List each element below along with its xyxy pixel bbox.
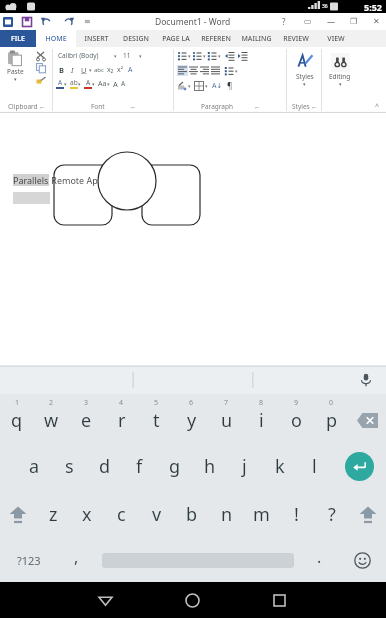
button[interactable]: Align xyxy=(177,65,188,76)
button[interactable]: c xyxy=(104,490,139,538)
button[interactable]: Emoji xyxy=(338,538,386,582)
button[interactable]: List xyxy=(207,51,217,61)
button[interactable]: I xyxy=(67,64,78,75)
button[interactable]: Paste xyxy=(0,47,52,113)
staticText: ⌐ xyxy=(312,104,317,110)
button[interactable]: REVIEW xyxy=(276,30,316,47)
button[interactable]: k xyxy=(262,442,297,490)
button[interactable]: Editing xyxy=(322,47,358,113)
button[interactable]: s xyxy=(52,442,87,490)
button[interactable]: Color xyxy=(56,78,64,89)
button[interactable]: 9 xyxy=(279,394,314,442)
button[interactable]: 3 xyxy=(69,394,104,442)
button[interactable]: ! xyxy=(279,490,314,538)
button[interactable]: ▭ xyxy=(302,16,313,27)
button[interactable]: z xyxy=(36,490,70,538)
button[interactable]: m xyxy=(244,490,279,538)
staticText: f xyxy=(136,454,143,479)
button[interactable]: U xyxy=(78,64,89,75)
staticText: ▾ xyxy=(89,67,92,73)
other: Cut xyxy=(36,51,46,61)
button[interactable]: PAGE LA xyxy=(156,30,196,47)
button[interactable]: Back xyxy=(77,582,134,618)
button[interactable]: 1 xyxy=(0,394,34,442)
button[interactable]: FILE xyxy=(0,30,36,47)
button[interactable]: Backspace xyxy=(349,394,386,442)
staticText: 6 xyxy=(189,398,194,408)
button[interactable]: Align xyxy=(210,65,221,76)
button[interactable]: List xyxy=(174,47,286,113)
staticText: 9 xyxy=(294,398,299,408)
button[interactable]: VIEW xyxy=(316,30,356,47)
button[interactable]: Voice input xyxy=(356,370,376,390)
staticText: ▾ xyxy=(303,81,306,87)
staticText: z xyxy=(49,502,58,527)
button[interactable]: , xyxy=(58,538,95,582)
button[interactable]: REFEREN xyxy=(196,30,236,47)
button[interactable]: 8 xyxy=(244,394,279,442)
button[interactable]: 6 xyxy=(174,394,209,442)
button[interactable]: — xyxy=(325,16,336,27)
button[interactable]: Calibri (Body) xyxy=(56,50,118,61)
staticText: 4 xyxy=(119,398,124,408)
button[interactable]: ✕ xyxy=(371,16,382,27)
button[interactable]: f xyxy=(122,442,157,490)
button[interactable]: Color xyxy=(70,78,78,89)
staticText: ▾ xyxy=(14,76,17,82)
button[interactable]: . xyxy=(301,538,338,582)
staticText: A xyxy=(121,79,126,88)
button[interactable]: j xyxy=(227,442,262,490)
button[interactable]: B xyxy=(56,64,67,75)
button[interactable]: Indent xyxy=(225,51,235,61)
button[interactable]: List xyxy=(177,51,187,61)
staticText: ▾ xyxy=(235,68,238,74)
button[interactable]: INSERT xyxy=(76,30,116,47)
button[interactable]: d xyxy=(87,442,122,490)
button[interactable]: DESIGN xyxy=(116,30,156,47)
button[interactable]: Space xyxy=(95,538,301,582)
button[interactable]: List xyxy=(192,51,202,61)
button[interactable]: ❐ xyxy=(348,16,359,27)
button[interactable]: Save xyxy=(22,17,32,27)
button[interactable]: g xyxy=(157,442,192,490)
button[interactable]: b xyxy=(174,490,209,538)
button[interactable]: 4 xyxy=(104,394,139,442)
button[interactable]: Calibri (Body) xyxy=(53,47,173,113)
button[interactable]: h xyxy=(192,442,227,490)
button[interactable]: x xyxy=(70,490,104,538)
button[interactable]: Shift xyxy=(0,490,36,538)
button[interactable]: Align xyxy=(199,65,210,76)
button[interactable]: 7 xyxy=(209,394,244,442)
button[interactable]: ?123 xyxy=(0,538,58,582)
button[interactable]: Indent xyxy=(238,51,248,61)
button[interactable]: n xyxy=(209,490,244,538)
button[interactable]: 2 xyxy=(34,394,69,442)
button[interactable]: Redo xyxy=(63,16,74,27)
button[interactable]: Styles xyxy=(287,47,321,113)
button[interactable]: ? xyxy=(314,490,349,538)
button[interactable]: MAILING xyxy=(236,30,276,47)
button[interactable]: l xyxy=(297,442,332,490)
button[interactable]: v xyxy=(139,490,174,538)
staticText: r xyxy=(118,408,126,433)
staticText: Paste xyxy=(7,67,24,76)
button[interactable]: Word xyxy=(3,17,13,27)
staticText: ⌐ xyxy=(131,104,136,110)
button[interactable]: Align xyxy=(188,65,199,76)
button[interactable]: Enter xyxy=(332,442,386,490)
staticText: ▾ xyxy=(339,81,342,87)
other: Copy xyxy=(36,63,46,73)
button[interactable]: 5 xyxy=(139,394,174,442)
button[interactable]: Undo xyxy=(41,16,52,27)
button[interactable]: ? xyxy=(278,16,289,27)
button[interactable]: 0 xyxy=(314,394,349,442)
staticText: — xyxy=(327,16,335,27)
button[interactable]: a xyxy=(17,442,52,490)
button[interactable]: Color xyxy=(84,78,92,89)
button[interactable]: Shift xyxy=(349,490,386,538)
button[interactable]: Home xyxy=(163,582,221,618)
button[interactable]: 11 xyxy=(121,50,143,61)
button[interactable]: List xyxy=(224,66,234,76)
button[interactable]: Recents xyxy=(250,582,308,618)
button[interactable]: HOME xyxy=(36,30,76,47)
